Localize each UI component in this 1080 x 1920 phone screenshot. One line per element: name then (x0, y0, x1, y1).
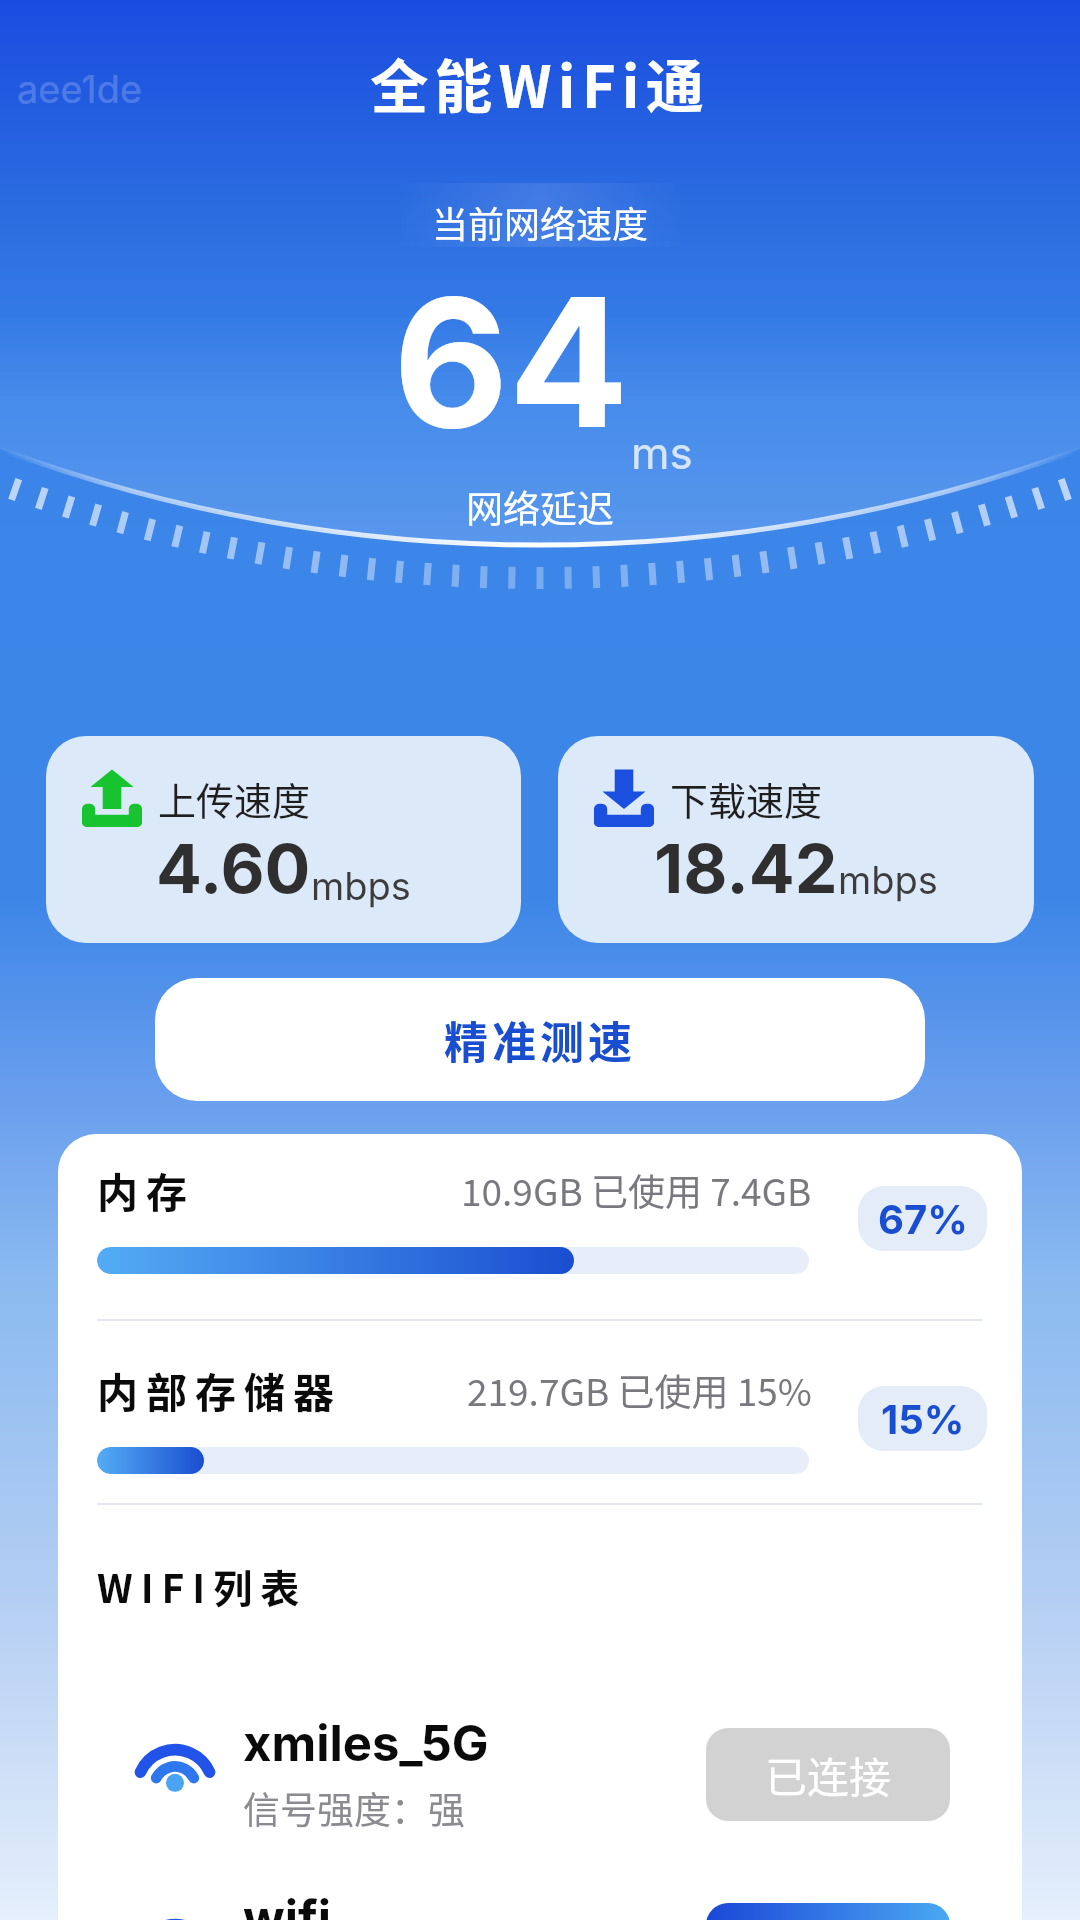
staticText: 219.7GB 已使用 15% (467, 1363, 812, 1417)
staticText: mbps (311, 863, 411, 909)
staticText: 18.42 (654, 827, 838, 909)
staticText: 全能WiFi通 (0, 41, 1080, 125)
staticText: xmiles_5G (243, 1714, 489, 1773)
staticText: 网络延迟 (0, 480, 1080, 534)
button[interactable]: 已连接 (706, 1728, 950, 1821)
staticText: 已连接 (765, 1744, 892, 1805)
staticText: 内存 (97, 1160, 195, 1219)
staticText: 上传速度 (158, 771, 311, 826)
staticText: 15% (881, 1395, 965, 1443)
staticText: 67% (878, 1195, 968, 1243)
staticText: wifi (243, 1889, 332, 1920)
button[interactable]: 上传速度 (46, 736, 521, 943)
staticText: aee1de (17, 66, 143, 112)
staticText: 当前网络速度 (0, 196, 1080, 248)
staticText: 4.60 (156, 827, 311, 909)
staticText: 信号强度：强 (243, 1781, 465, 1835)
button[interactable]: 下载速度 (558, 736, 1034, 943)
staticText: 10.9GB 已使用 7.4GB (461, 1163, 812, 1217)
staticText: mbps (838, 857, 938, 903)
staticText: 内部存储器 (97, 1360, 342, 1419)
other: 下载速度 (594, 769, 654, 827)
button[interactable]: 精准测速 (155, 978, 925, 1101)
staticText: 64 (393, 255, 629, 470)
staticText: 连接 (786, 1919, 871, 1920)
staticText: 精准测速 (444, 1008, 636, 1072)
staticText: ms (631, 426, 693, 479)
button[interactable]: 连接 (706, 1903, 950, 1920)
other: 上传速度 (82, 769, 142, 827)
button[interactable]: xmiles_5G (58, 1687, 1022, 1862)
button[interactable]: wifi (58, 1862, 1022, 1920)
staticText: WIFI列表 (97, 1558, 308, 1614)
staticText: 下载速度 (670, 771, 823, 826)
